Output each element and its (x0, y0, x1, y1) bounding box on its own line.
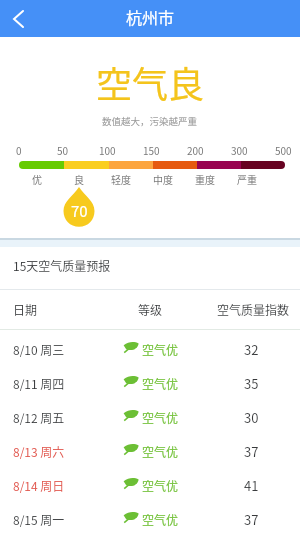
staticText: 空气优 (142, 409, 179, 426)
staticText: 15天空气质量预报 (13, 257, 111, 274)
staticText: 500 (275, 143, 292, 157)
staticText: 8/10 周三 (13, 341, 65, 358)
staticText: 等级 (138, 301, 163, 318)
staticText: 重度 (195, 172, 215, 186)
staticText: 41 (244, 476, 259, 495)
staticText: 数值越大，污染越严重 (102, 114, 198, 128)
staticText: 8/11 周四 (13, 375, 65, 392)
button[interactable]: 8/11 周四 (0, 366, 300, 400)
staticText: 杭州市 (126, 5, 175, 28)
staticText: 良 (74, 172, 84, 186)
staticText: 日期 (13, 301, 38, 318)
staticText: 150 (143, 143, 160, 157)
button[interactable]: 8/13 周六 (0, 434, 300, 468)
staticText: 严重 (237, 172, 257, 186)
staticText: 50 (57, 143, 69, 157)
button[interactable]: 8/15 周一 (0, 502, 300, 533)
staticText: 37 (244, 510, 259, 529)
staticText: 300 (231, 143, 248, 157)
staticText: 200 (187, 143, 204, 157)
staticText: 0 (16, 143, 22, 157)
staticText: 100 (99, 143, 116, 157)
staticText: 35 (244, 374, 259, 393)
staticText: 优 (32, 172, 42, 186)
button[interactable]: 8/12 周五 (0, 400, 300, 434)
staticText: 空气优 (142, 375, 179, 392)
staticText: 70 (71, 200, 88, 222)
staticText: 空气优 (142, 341, 179, 358)
staticText: 空气优 (142, 477, 179, 494)
staticText: 8/13 周六 (13, 443, 65, 460)
button[interactable]: 杭州市 (0, 0, 300, 37)
staticText: 轻度 (111, 172, 131, 186)
button[interactable] (0, 0, 36, 36)
staticText: 37 (244, 442, 259, 461)
button[interactable]: 8/14 周日 (0, 468, 300, 502)
staticText: 空气质量指数 (217, 301, 290, 318)
staticText: 中度 (153, 172, 173, 186)
staticText: 8/14 周日 (13, 477, 65, 494)
staticText: 空气良 (96, 56, 205, 108)
staticText: 8/12 周五 (13, 409, 65, 426)
staticText: 32 (244, 340, 259, 359)
staticText: 8/15 周一 (13, 511, 65, 528)
staticText: 空气优 (142, 443, 179, 460)
button[interactable]: 8/10 周三 (0, 332, 300, 366)
staticText: 30 (244, 408, 259, 427)
staticText: 空气优 (142, 511, 179, 528)
